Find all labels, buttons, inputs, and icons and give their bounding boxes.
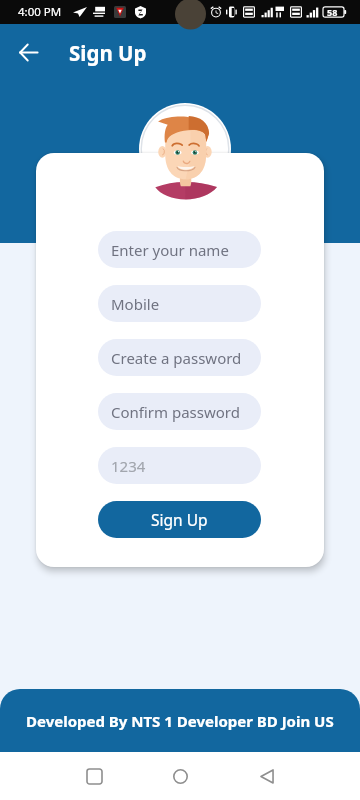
staticText: Sign Up (151, 509, 208, 530)
staticText: Confirm password (111, 402, 240, 422)
button[interactable]: 1234 (98, 447, 261, 484)
button[interactable]: Back (4, 28, 52, 76)
staticText: Sign Up (69, 39, 147, 67)
staticText: 58 (327, 6, 338, 18)
button[interactable]: Recents (72, 752, 116, 800)
button[interactable]: Confirm password (98, 393, 261, 430)
button[interactable]: Create a password (98, 339, 261, 376)
button[interactable]: Developed By NTS 1 Developer BD Join US (0, 689, 360, 752)
staticText: Developed By NTS 1 Developer BD Join US (26, 711, 334, 731)
staticText: Mobile (111, 294, 160, 314)
staticText: Create a password (111, 348, 242, 368)
staticText: Enter your name (111, 240, 229, 260)
button[interactable]: Mobile (98, 285, 261, 322)
button[interactable]: Enter your name (98, 231, 261, 268)
staticText: 4:00 PM (18, 4, 62, 20)
button[interactable]: Sign Up (98, 501, 261, 538)
button[interactable]: Home (158, 752, 202, 800)
button[interactable]: Back (245, 752, 289, 800)
staticText: 1234 (111, 456, 146, 476)
